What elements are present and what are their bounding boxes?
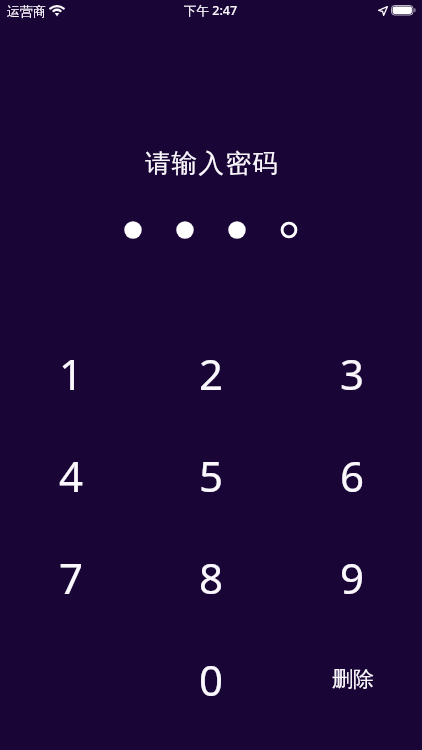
- button[interactable]: 4: [1, 424, 141, 526]
- other: Location: [378, 6, 388, 16]
- button[interactable]: 0: [141, 628, 282, 730]
- staticText: 5: [199, 447, 224, 504]
- button[interactable]: 5: [141, 424, 282, 526]
- staticText: 4: [59, 447, 84, 504]
- button[interactable]: 2: [141, 322, 282, 424]
- staticText: 2: [199, 345, 224, 402]
- other: Wi-Fi: [49, 5, 65, 17]
- staticText: 3: [340, 345, 365, 402]
- staticText: 6: [340, 447, 365, 504]
- button[interactable]: 1: [1, 322, 141, 424]
- button[interactable]: 7: [1, 526, 141, 628]
- button[interactable]: 删除: [282, 628, 422, 730]
- staticText: 删除: [332, 666, 374, 692]
- staticText: 下午 2:47: [184, 2, 238, 19]
- staticText: 0: [199, 651, 224, 708]
- staticText: 8: [199, 549, 224, 606]
- button[interactable]: 6: [282, 424, 422, 526]
- button[interactable]: 9: [282, 526, 422, 628]
- button[interactable]: 3: [282, 322, 422, 424]
- staticText: 7: [59, 549, 84, 606]
- staticText: 运营商: [7, 3, 46, 19]
- staticText: 1: [59, 345, 84, 402]
- other: Battery: [391, 5, 416, 16]
- staticText: 9: [340, 549, 365, 606]
- button[interactable]: 8: [141, 526, 282, 628]
- staticText: 请输入密码: [1, 147, 422, 179]
